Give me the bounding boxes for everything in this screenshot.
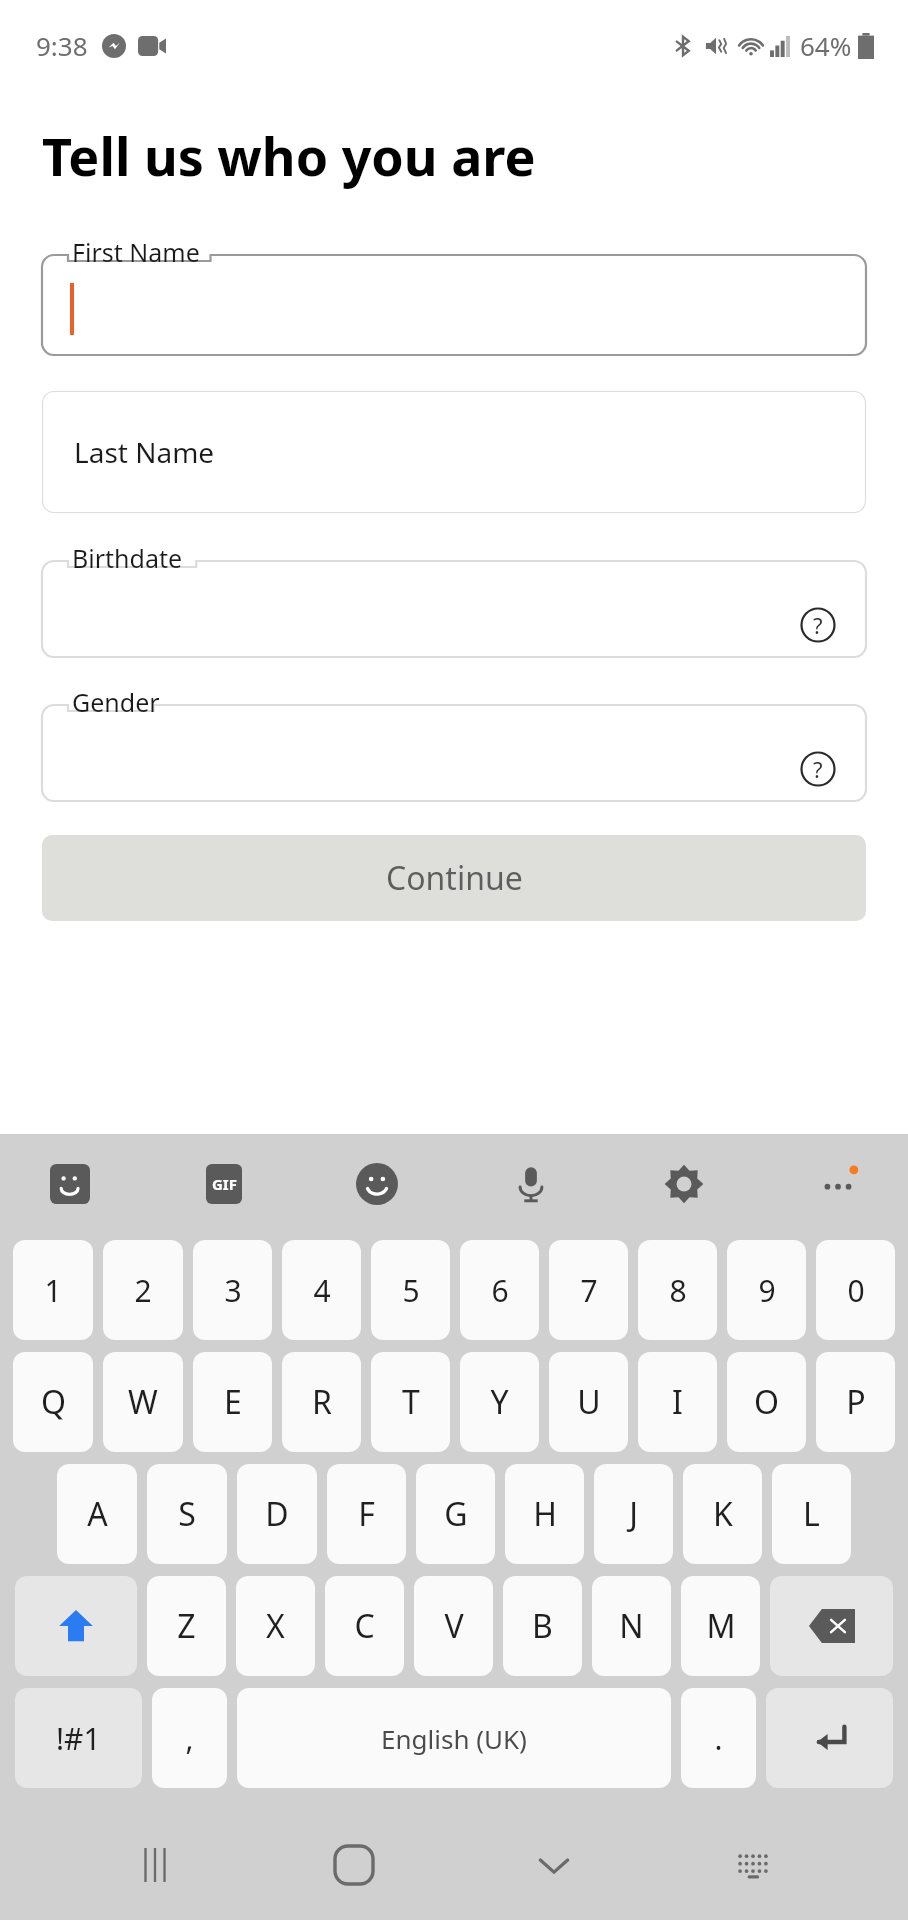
button[interactable]: Stickers — [44, 1158, 96, 1210]
staticText: O — [754, 1380, 779, 1424]
button[interactable]: Enter — [766, 1688, 893, 1788]
staticText: J — [629, 1492, 638, 1536]
button[interactable]: Birthdate — [42, 543, 866, 657]
staticText: GIF — [212, 1174, 237, 1194]
button[interactable]: 0 — [816, 1240, 895, 1340]
button[interactable]: Last Name — [42, 391, 866, 513]
button[interactable]: First Name — [42, 237, 866, 355]
button[interactable]: Help — [796, 603, 840, 647]
staticText: L — [803, 1492, 820, 1536]
button[interactable]: W — [103, 1352, 183, 1452]
button[interactable]: Voice input — [505, 1158, 557, 1210]
staticText: R — [312, 1380, 332, 1424]
staticText: G — [444, 1492, 468, 1536]
staticText: . — [714, 1718, 723, 1759]
button[interactable]: 8 — [638, 1240, 717, 1340]
button[interactable]: !#1 — [15, 1688, 142, 1788]
button[interactable]: Gender — [42, 687, 866, 801]
button[interactable]: A — [57, 1464, 137, 1564]
button[interactable]: N — [592, 1576, 671, 1676]
staticText: W — [128, 1380, 158, 1424]
button[interactable]: 5 — [371, 1240, 450, 1340]
staticText: Q — [41, 1380, 66, 1424]
button[interactable]: E — [193, 1352, 272, 1452]
button[interactable]: Switch keyboard — [718, 1830, 788, 1900]
staticText: Tell us who you are — [42, 120, 536, 191]
button[interactable]: 3 — [193, 1240, 272, 1340]
button[interactable]: S — [147, 1464, 227, 1564]
staticText: K — [713, 1492, 733, 1536]
button[interactable]: GIF — [198, 1158, 250, 1210]
staticText: First Name — [72, 235, 200, 269]
button[interactable]: X — [236, 1576, 315, 1676]
button[interactable]: L — [772, 1464, 851, 1564]
button[interactable]: 4 — [282, 1240, 361, 1340]
button[interactable]: 7 — [549, 1240, 628, 1340]
staticText: B — [532, 1604, 553, 1648]
staticText: 2 — [134, 1270, 152, 1311]
staticText: U — [577, 1380, 601, 1424]
button[interactable]: U — [549, 1352, 628, 1452]
staticText: 6 — [491, 1270, 509, 1311]
button[interactable]: P — [816, 1352, 895, 1452]
button[interactable]: O — [727, 1352, 806, 1452]
button[interactable]: H — [505, 1464, 584, 1564]
staticText: 4 — [313, 1270, 331, 1311]
staticText: Z — [177, 1604, 196, 1648]
button[interactable]: Z — [147, 1576, 226, 1676]
button[interactable]: . — [681, 1688, 756, 1788]
button[interactable]: G — [416, 1464, 495, 1564]
staticText: M — [706, 1604, 736, 1648]
staticText: C — [354, 1604, 375, 1648]
button[interactable]: Backspace — [770, 1576, 893, 1676]
button[interactable]: Hide keyboard — [519, 1830, 589, 1900]
staticText: 8 — [669, 1270, 687, 1311]
staticText: Last Name — [74, 433, 215, 471]
staticText: 0 — [847, 1270, 865, 1311]
staticText: X — [266, 1604, 285, 1648]
button[interactable]: Home — [319, 1830, 389, 1900]
staticText: T — [402, 1380, 420, 1424]
button[interactable]: K — [683, 1464, 762, 1564]
button[interactable]: Q — [13, 1352, 93, 1452]
button[interactable]: R — [282, 1352, 361, 1452]
button[interactable]: Continue — [42, 835, 866, 921]
staticText: 3 — [224, 1270, 242, 1311]
button[interactable]: Shift — [15, 1576, 137, 1676]
button[interactable]: Y — [460, 1352, 539, 1452]
button[interactable]: I — [638, 1352, 717, 1452]
staticText: 9 — [758, 1270, 776, 1311]
staticText: P — [846, 1380, 866, 1424]
button[interactable]: , — [152, 1688, 227, 1788]
button[interactable]: Recents — [120, 1830, 190, 1900]
button[interactable]: 2 — [103, 1240, 183, 1340]
staticText: Gender — [72, 685, 160, 719]
button[interactable]: English (UK) — [237, 1688, 671, 1788]
button[interactable]: C — [325, 1576, 404, 1676]
staticText: ? — [813, 610, 823, 640]
staticText: D — [265, 1492, 289, 1536]
staticText: 1 — [44, 1270, 62, 1311]
staticText: ? — [813, 754, 823, 784]
button[interactable]: Help — [796, 747, 840, 791]
button[interactable]: F — [327, 1464, 406, 1564]
button[interactable]: J — [594, 1464, 673, 1564]
staticText: V — [444, 1604, 464, 1648]
staticText: A — [87, 1492, 108, 1536]
staticText: Birthdate — [72, 541, 183, 575]
button[interactable]: Emoji — [351, 1158, 403, 1210]
button[interactable]: 1 — [13, 1240, 93, 1340]
button[interactable]: 9 — [727, 1240, 806, 1340]
button[interactable]: D — [237, 1464, 317, 1564]
button[interactable]: More options — [812, 1158, 864, 1210]
button[interactable]: M — [681, 1576, 760, 1676]
staticText: 5 — [402, 1270, 420, 1311]
button[interactable]: B — [503, 1576, 582, 1676]
button[interactable]: Keyboard settings — [658, 1158, 710, 1210]
button[interactable]: V — [414, 1576, 493, 1676]
staticText: !#1 — [56, 1718, 101, 1759]
button[interactable]: 6 — [460, 1240, 539, 1340]
staticText: S — [178, 1492, 196, 1536]
button[interactable]: T — [371, 1352, 450, 1452]
staticText: H — [533, 1492, 557, 1536]
